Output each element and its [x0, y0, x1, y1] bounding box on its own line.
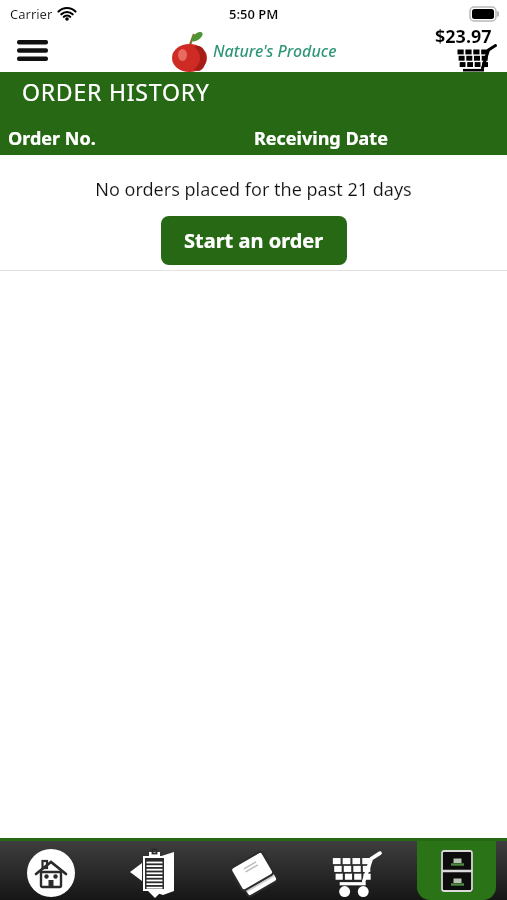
staticText: No orders placed for the past 21 days	[0, 177, 507, 202]
button[interactable]	[204, 841, 305, 900]
staticText: Nature's Produce	[213, 40, 337, 62]
button[interactable]	[456, 43, 496, 72]
staticText: Carrier	[10, 5, 53, 23]
button[interactable]	[102, 841, 204, 900]
button[interactable]	[417, 841, 496, 900]
button[interactable]: Start an order	[161, 216, 347, 265]
button[interactable]	[305, 841, 406, 900]
button[interactable]	[17, 40, 48, 61]
staticText: Order No.	[8, 126, 96, 151]
staticText: Receiving Date	[254, 126, 388, 151]
staticText: 5:50 PM	[229, 5, 279, 23]
staticText: ORDER HISTORY	[22, 76, 210, 107]
button[interactable]	[0, 841, 102, 900]
staticText: Start an order	[184, 227, 324, 254]
staticText: $23.97	[435, 24, 492, 49]
